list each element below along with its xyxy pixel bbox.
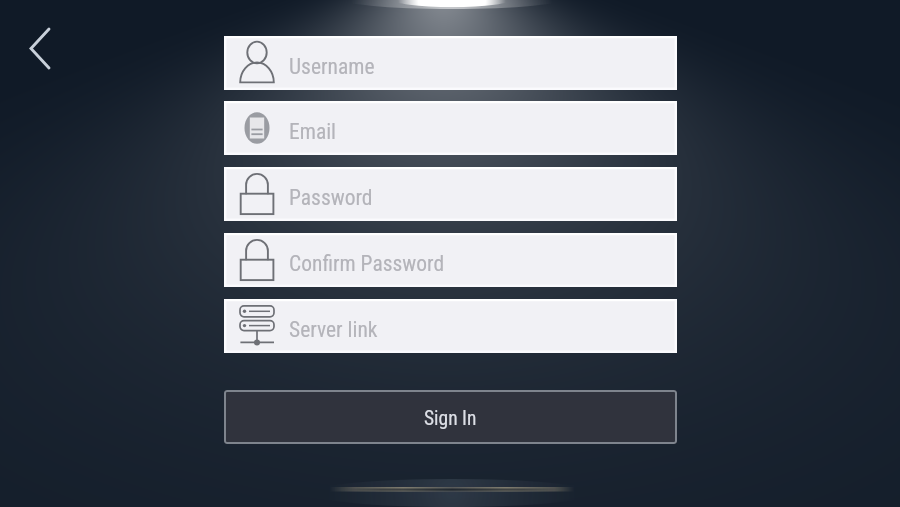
button[interactable]: Username xyxy=(224,36,677,90)
staticText: Confirm Password xyxy=(289,251,445,276)
button[interactable]: Server link xyxy=(224,299,677,353)
staticText: Email xyxy=(289,119,337,144)
staticText: Username xyxy=(289,54,375,79)
staticText: Server link xyxy=(289,317,378,342)
button[interactable]: Sign In xyxy=(224,390,677,444)
button[interactable]: Confirm Password xyxy=(224,233,677,287)
button[interactable]: Password xyxy=(224,167,677,221)
staticText: Password xyxy=(289,185,373,210)
staticText: Sign In xyxy=(424,407,477,430)
button[interactable]: Back xyxy=(18,20,70,72)
button[interactable]: Email xyxy=(224,101,677,155)
